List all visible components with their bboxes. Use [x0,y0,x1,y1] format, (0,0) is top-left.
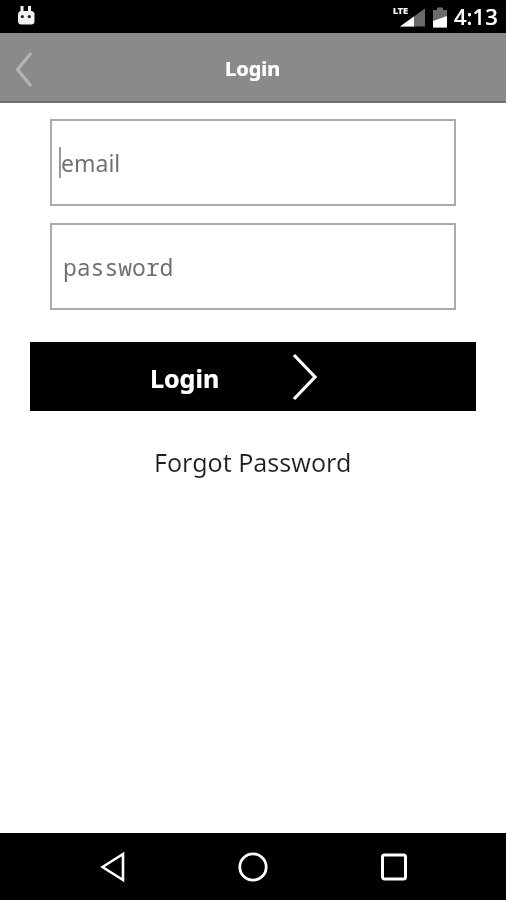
staticText: Login [150,361,220,395]
button[interactable]: Forgot Password [154,445,352,479]
staticText: password [63,251,174,282]
button[interactable] [229,843,277,891]
button[interactable] [0,44,48,92]
button[interactable]: password [50,223,456,310]
button[interactable] [89,843,137,891]
staticText: 4:13 [454,1,498,31]
button[interactable]: email [50,119,456,206]
button[interactable]: Login [30,342,476,411]
button[interactable] [370,843,418,891]
staticText: Login [225,55,281,82]
staticText: LTE [393,4,409,16]
staticText: email [61,147,121,178]
